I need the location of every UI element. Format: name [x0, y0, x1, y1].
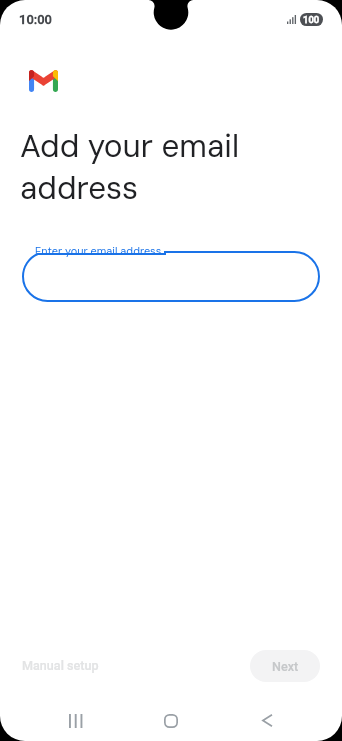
button[interactable]: Home: [147, 702, 195, 739]
button[interactable]: Enter your email address: [22, 251, 320, 302]
staticText: 100: [303, 14, 320, 25]
staticText: Next: [272, 659, 299, 674]
button[interactable]: Next: [250, 650, 320, 682]
staticText: Manual setup: [22, 658, 99, 673]
button[interactable]: Back: [243, 702, 291, 739]
button[interactable]: Manual setup: [14, 652, 107, 679]
staticText: 10:00: [19, 12, 53, 27]
button[interactable]: Recent apps: [52, 702, 100, 739]
staticText: Add your email address: [20, 126, 240, 209]
staticText: Enter your email address: [35, 244, 162, 258]
